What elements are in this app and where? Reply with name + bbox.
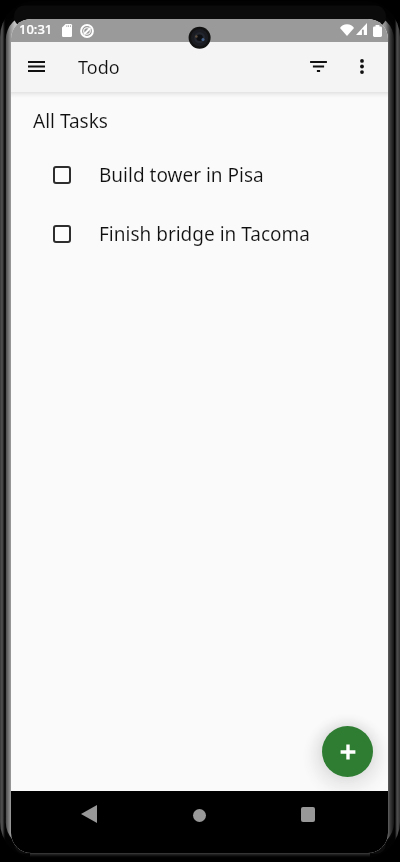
staticText: 10:31 [19, 20, 53, 38]
staticText: Build tower in Pisa [99, 162, 264, 188]
staticText: All Tasks [33, 108, 108, 134]
button[interactable]: Menu [13, 43, 59, 89]
button[interactable]: More options [339, 43, 385, 89]
button[interactable]: Add task [322, 726, 373, 777]
button[interactable]: Finish bridge in Tacoma [11, 214, 388, 254]
staticText: Todo [78, 55, 120, 80]
staticText: Finish bridge in Tacoma [99, 221, 310, 247]
button[interactable]: Home [176, 792, 222, 838]
button[interactable]: Build tower in Pisa [11, 155, 388, 195]
button[interactable]: Recents [285, 791, 331, 837]
button[interactable]: Filter [295, 43, 341, 89]
button[interactable]: Back [66, 791, 112, 837]
